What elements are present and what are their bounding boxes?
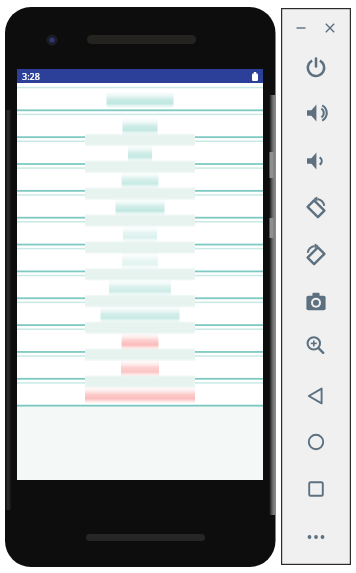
button[interactable]: Screenshot	[303, 289, 329, 315]
button[interactable]: Rotate right	[303, 242, 329, 268]
button[interactable]: More	[303, 524, 329, 550]
button[interactable]: Close	[320, 18, 340, 38]
button[interactable]: Rotate left	[303, 195, 329, 221]
button[interactable]: Zoom	[303, 332, 329, 358]
staticText: 3:28	[22, 70, 40, 82]
button[interactable]: Power	[303, 54, 329, 80]
button[interactable]: Home	[303, 429, 329, 455]
button[interactable]: Volume down	[303, 148, 329, 174]
button[interactable]: Back	[303, 383, 329, 409]
button[interactable]: Overview	[303, 476, 329, 502]
button[interactable]: Volume up	[303, 100, 329, 126]
button[interactable]: Minimize	[291, 18, 311, 38]
